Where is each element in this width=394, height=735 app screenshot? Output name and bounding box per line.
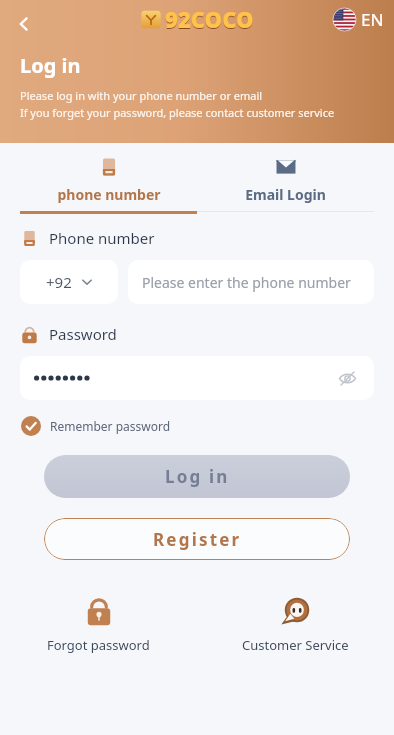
staticText: Log in bbox=[165, 465, 230, 488]
staticText: Email Login bbox=[245, 185, 326, 204]
staticText: Password bbox=[49, 324, 117, 344]
button[interactable]: Forgot password bbox=[0, 592, 197, 656]
staticText: +92 bbox=[46, 272, 72, 292]
staticText: Customer Service bbox=[242, 636, 349, 654]
staticText: Remember password bbox=[50, 418, 171, 434]
staticText: If you forget your password, please cont… bbox=[20, 105, 335, 120]
button[interactable]: Register bbox=[44, 518, 350, 560]
staticText: 92COCO bbox=[165, 5, 254, 35]
staticText: Log in bbox=[20, 52, 81, 79]
staticText: 92COCO bbox=[165, 4, 254, 34]
button[interactable]: +92 bbox=[20, 260, 118, 304]
button[interactable]: Back bbox=[4, 4, 44, 44]
staticText: Phone number bbox=[49, 228, 155, 248]
button[interactable]: Show password bbox=[20, 356, 374, 400]
button[interactable]: Email Login bbox=[197, 151, 374, 212]
button[interactable]: Log in bbox=[44, 455, 350, 498]
button[interactable]: phone number bbox=[20, 151, 197, 214]
staticText: Please log in with your phone number or … bbox=[20, 88, 263, 103]
button[interactable]: Show password bbox=[334, 365, 360, 391]
button[interactable]: EN bbox=[331, 6, 386, 33]
staticText: Register bbox=[153, 528, 242, 551]
button[interactable]: Remember password bbox=[20, 414, 172, 438]
staticText: Please enter the phone number bbox=[142, 273, 351, 292]
staticText: Forgot password bbox=[47, 636, 150, 654]
staticText: EN bbox=[361, 8, 384, 31]
button[interactable]: Customer Service bbox=[197, 592, 394, 656]
staticText: phone number bbox=[57, 185, 161, 204]
button[interactable]: Please enter the phone number bbox=[128, 260, 374, 304]
